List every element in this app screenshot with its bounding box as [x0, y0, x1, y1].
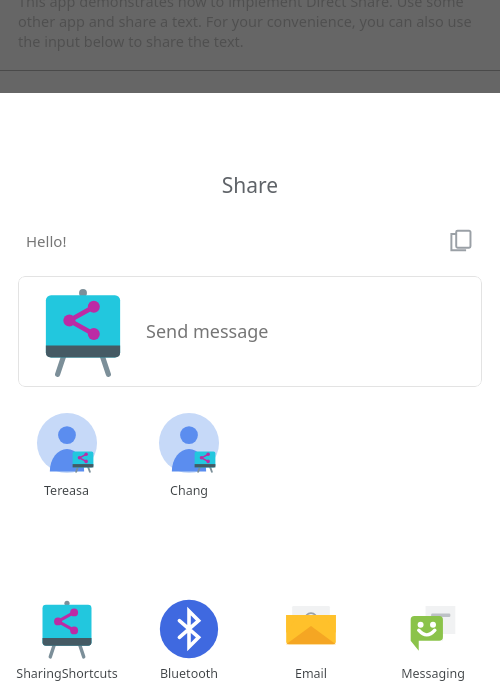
button[interactable]: Bluetooth [134, 598, 244, 682]
staticText: Share [0, 171, 500, 200]
button[interactable]: Email [256, 598, 366, 682]
staticText: SharingShortcuts [12, 665, 122, 682]
button[interactable]: Send message [18, 276, 482, 387]
button[interactable]: Messaging [378, 598, 488, 682]
button[interactable]: SharingShortcuts [12, 598, 122, 682]
staticText: Send message [146, 319, 269, 344]
staticText: Chang [170, 482, 209, 499]
staticText: Email [256, 665, 366, 682]
button[interactable]: Tereasa [6, 413, 128, 499]
staticText: Bluetooth [134, 665, 244, 682]
button[interactable]: Chang [128, 413, 250, 499]
staticText: This app demonstrates how to implement D… [18, 0, 482, 51]
button[interactable]: Copy text [440, 220, 482, 262]
staticText: Tereasa [44, 482, 90, 499]
staticText: Messaging [378, 665, 488, 682]
staticText: Hello! [26, 231, 67, 251]
